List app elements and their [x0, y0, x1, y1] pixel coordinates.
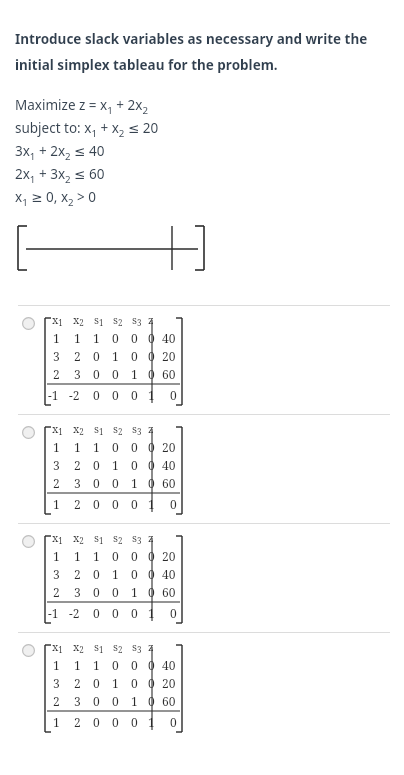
staticText: 0: [112, 475, 119, 491]
staticText: 0: [112, 657, 119, 673]
staticText: 1: [148, 496, 155, 512]
staticText: 1: [148, 605, 155, 621]
staticText: 2: [53, 584, 60, 600]
staticText: 2: [74, 566, 81, 582]
staticText: 3: [53, 675, 60, 691]
staticText: 0: [93, 693, 100, 709]
staticText: x2: [73, 530, 84, 547]
staticText: 20: [162, 439, 176, 455]
staticText: 0: [170, 605, 177, 621]
staticText: 0: [112, 330, 119, 346]
staticText: 0: [93, 584, 100, 600]
staticText: z: [148, 639, 154, 654]
staticText: 0: [93, 605, 100, 621]
staticText: 40: [162, 330, 176, 346]
button[interactable]: Select answer choice: [22, 426, 35, 439]
staticText: Introduce slack variables as necessary a…: [15, 30, 368, 74]
staticText: 0: [131, 496, 138, 512]
staticText: z: [148, 421, 154, 436]
staticText: 0: [112, 693, 119, 709]
staticText: 0: [170, 714, 177, 730]
staticText: x1: [52, 530, 63, 547]
staticText: 0: [112, 496, 119, 512]
staticText: 0: [93, 348, 100, 364]
staticText: 2x1 + 3x2 ≤ 60: [15, 165, 105, 185]
staticText: s3: [132, 639, 142, 656]
staticText: 0: [131, 387, 138, 403]
staticText: 1: [53, 330, 60, 346]
staticText: 0: [131, 675, 138, 691]
staticText: s2: [113, 639, 123, 656]
staticText: s1: [94, 421, 104, 438]
staticText: s3: [132, 421, 142, 438]
staticText: 0: [148, 457, 155, 473]
staticText: 3: [53, 457, 60, 473]
staticText: 0: [148, 693, 155, 709]
staticText: 2: [74, 675, 81, 691]
staticText: 0: [131, 714, 138, 730]
button[interactable]: Select answer choice: [22, 317, 35, 330]
staticText: 1: [93, 439, 100, 455]
staticText: 2: [74, 714, 81, 730]
staticText: 60: [162, 475, 176, 491]
staticText: 0: [148, 675, 155, 691]
staticText: -1: [48, 605, 59, 621]
button[interactable]: Select answer choice: [22, 535, 35, 548]
staticText: 0: [93, 714, 100, 730]
staticText: x2: [73, 639, 84, 656]
staticText: 0: [148, 657, 155, 673]
staticText: 0: [131, 330, 138, 346]
staticText: 0: [148, 348, 155, 364]
staticText: 1: [74, 439, 81, 455]
staticText: 3: [74, 475, 81, 491]
staticText: 1: [74, 657, 81, 673]
staticText: 0: [148, 475, 155, 491]
staticText: 3: [53, 566, 60, 582]
staticText: 0: [112, 366, 119, 382]
staticText: 1: [93, 657, 100, 673]
staticText: 20: [162, 548, 176, 564]
staticText: 3x1 + 2x2 ≤ 40: [15, 142, 105, 162]
staticText: -2: [69, 387, 80, 403]
staticText: 2: [53, 366, 60, 382]
staticText: s3: [132, 312, 142, 329]
staticText: 0: [148, 330, 155, 346]
staticText: 0: [93, 675, 100, 691]
staticText: 0: [112, 387, 119, 403]
staticText: 60: [162, 366, 176, 382]
staticText: 0: [148, 548, 155, 564]
staticText: 0: [131, 657, 138, 673]
staticText: 1: [112, 348, 119, 364]
staticText: 2: [74, 496, 81, 512]
staticText: 1: [131, 584, 138, 600]
staticText: x1: [52, 421, 63, 438]
staticText: s2: [113, 421, 123, 438]
staticText: 60: [162, 693, 176, 709]
staticText: 0: [148, 566, 155, 582]
staticText: Maximize z = x1 + 2x2: [15, 96, 148, 116]
staticText: 1: [112, 566, 119, 582]
staticText: s1: [94, 530, 104, 547]
staticText: s1: [94, 639, 104, 656]
staticText: 40: [162, 457, 176, 473]
staticText: z: [148, 312, 154, 327]
staticText: s3: [132, 530, 142, 547]
staticText: 3: [74, 366, 81, 382]
staticText: x1 ≥ 0, x2 > 0: [15, 188, 97, 208]
button[interactable]: Select answer choice: [22, 644, 35, 657]
staticText: 0: [112, 714, 119, 730]
staticText: 0: [93, 366, 100, 382]
staticText: 0: [93, 457, 100, 473]
staticText: -2: [69, 605, 80, 621]
staticText: 0: [93, 566, 100, 582]
staticText: x1: [52, 639, 63, 656]
staticText: 40: [162, 657, 176, 673]
staticText: 1: [53, 439, 60, 455]
staticText: 1: [131, 693, 138, 709]
staticText: 0: [170, 496, 177, 512]
staticText: 1: [112, 457, 119, 473]
staticText: 0: [93, 496, 100, 512]
staticText: 0: [170, 387, 177, 403]
staticText: z: [148, 530, 154, 545]
staticText: 20: [162, 348, 176, 364]
